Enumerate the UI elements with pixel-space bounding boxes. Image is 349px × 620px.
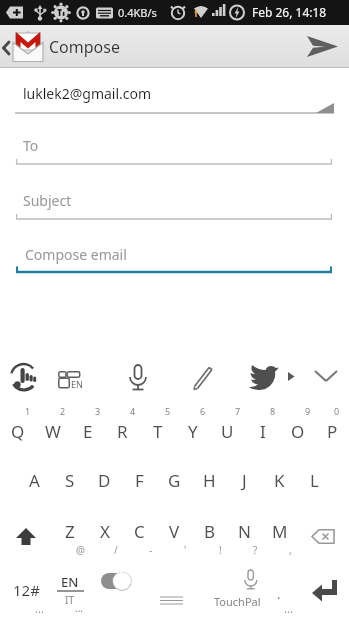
button[interactable] <box>295 25 349 68</box>
button[interactable]: D <box>87 458 122 502</box>
button[interactable]: E <box>70 410 105 452</box>
staticText: R <box>117 420 128 443</box>
staticText: W <box>45 420 61 443</box>
staticText: I <box>260 420 266 443</box>
button[interactable]: 12# <box>4 570 56 620</box>
staticText: O <box>291 420 305 443</box>
staticText: J <box>242 469 247 492</box>
button[interactable]: I <box>245 410 280 452</box>
staticText: / <box>114 543 118 556</box>
staticText: 2 <box>60 405 66 417</box>
staticText: Feb 26, 14:18 <box>252 4 327 20</box>
button[interactable]: A <box>17 458 52 502</box>
staticText: D <box>98 469 111 492</box>
button[interactable]: U <box>210 410 245 452</box>
staticText: IT <box>65 593 74 607</box>
button[interactable]: W <box>35 410 70 452</box>
staticText: B <box>204 520 216 543</box>
button[interactable]: EN <box>56 570 92 620</box>
staticText: EN <box>71 378 83 390</box>
button[interactable]: P <box>315 410 349 452</box>
staticText: - <box>149 543 153 556</box>
staticText: ... <box>75 601 84 615</box>
button[interactable]: To <box>0 128 349 170</box>
button[interactable]: G <box>157 458 192 502</box>
button[interactable]: C <box>122 511 157 551</box>
button[interactable] <box>285 364 299 390</box>
staticText: TouchPal <box>214 594 261 609</box>
staticText: Y <box>188 420 198 443</box>
staticText: luklek2@gmail.com <box>23 84 152 103</box>
button[interactable]: K <box>262 458 297 502</box>
staticText: ! <box>219 543 222 556</box>
button[interactable] <box>96 566 138 596</box>
staticText: Compose email <box>25 245 127 264</box>
staticText: @ <box>76 543 85 556</box>
button[interactable]: L <box>297 458 332 502</box>
staticText: Z <box>65 520 75 543</box>
staticText: E <box>83 420 93 443</box>
staticText: ... <box>284 601 293 616</box>
staticText: . <box>277 585 281 603</box>
button[interactable]: M <box>262 511 297 551</box>
button[interactable] <box>185 360 217 396</box>
button[interactable] <box>304 510 344 546</box>
button[interactable]: luklek2@gmail.com <box>0 75 349 115</box>
button[interactable]: O <box>280 410 315 452</box>
staticText: 0 <box>334 405 340 417</box>
staticText: P <box>327 420 338 443</box>
button[interactable]: T <box>140 410 175 452</box>
button[interactable]: S <box>52 458 87 502</box>
button[interactable]: N <box>227 511 262 551</box>
button[interactable]: B <box>192 511 227 551</box>
button[interactable] <box>8 520 44 556</box>
button[interactable]: V <box>157 511 192 551</box>
button[interactable]: Z <box>52 511 87 551</box>
button[interactable] <box>122 358 154 398</box>
staticText: To <box>23 136 39 155</box>
staticText: ' <box>184 543 187 556</box>
staticText: ? <box>253 543 258 556</box>
staticText: 5 <box>165 405 171 417</box>
staticText: L <box>310 469 319 492</box>
staticText: H <box>203 469 216 492</box>
button[interactable]: Compose <box>0 25 160 68</box>
staticText: X <box>100 520 110 543</box>
button[interactable]: Q <box>0 410 35 452</box>
button[interactable]: J <box>227 458 262 502</box>
button[interactable]: F <box>122 458 157 502</box>
staticText: 6 <box>200 405 206 417</box>
button[interactable]: EN <box>52 360 86 396</box>
staticText: F <box>135 469 144 492</box>
staticText: Compose <box>49 36 120 58</box>
staticText: M <box>272 520 288 543</box>
button[interactable] <box>6 358 40 396</box>
staticText: K <box>274 469 285 492</box>
staticText: 8 <box>270 405 276 417</box>
button[interactable]: Compose email <box>0 238 349 278</box>
button[interactable]: X <box>87 511 122 551</box>
button[interactable] <box>308 360 344 396</box>
staticText: Subject <box>23 191 72 210</box>
staticText: C <box>134 520 145 543</box>
staticText: A <box>29 469 40 492</box>
staticText: , <box>289 543 292 556</box>
staticText: 4 <box>130 405 136 417</box>
staticText: Q <box>11 420 25 443</box>
staticText: 1 <box>25 405 31 417</box>
staticText: 0.4KB/s <box>118 5 157 20</box>
staticText: EN <box>61 573 79 591</box>
staticText: S <box>65 469 75 492</box>
button[interactable]: R <box>105 410 140 452</box>
staticText: 9 <box>305 405 311 417</box>
button[interactable]: H <box>192 458 227 502</box>
button[interactable]: Subject <box>0 183 349 225</box>
staticText: U <box>221 420 234 443</box>
button[interactable] <box>244 358 282 396</box>
staticText: 7 <box>235 405 241 417</box>
button[interactable]: Y <box>175 410 210 452</box>
staticText: 12# <box>13 580 40 600</box>
staticText: G <box>168 469 181 492</box>
button[interactable]: TouchPal <box>140 565 300 617</box>
button[interactable] <box>306 572 348 616</box>
